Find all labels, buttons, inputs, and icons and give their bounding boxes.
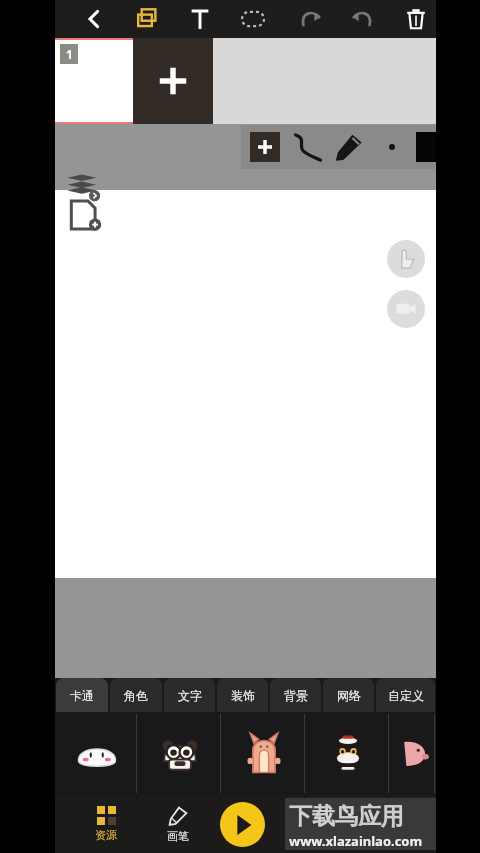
button[interactable]: 文字: [164, 678, 215, 712]
button[interactable]: [391, 712, 435, 795]
button[interactable]: 自定义: [376, 678, 435, 712]
button[interactable]: 角色: [110, 678, 162, 712]
button[interactable]: [307, 712, 389, 795]
button[interactable]: 网络: [323, 678, 374, 712]
button[interactable]: Brush size: [380, 135, 404, 159]
button[interactable]: Undo: [293, 2, 327, 36]
button[interactable]: [56, 712, 137, 795]
button[interactable]: Layers: [65, 172, 105, 204]
button[interactable]: 装饰: [217, 678, 268, 712]
button[interactable]: Add page: [67, 198, 103, 234]
button[interactable]: Back: [77, 2, 111, 36]
button[interactable]: Pencil: [332, 130, 366, 164]
button[interactable]: Layers: [130, 2, 164, 36]
staticText: 画笔: [167, 829, 189, 843]
button[interactable]: Camera view: [387, 290, 425, 328]
staticText: www.xlazainlao.com: [289, 832, 423, 850]
button[interactable]: 卡通: [56, 678, 108, 712]
staticText: 网络: [337, 688, 361, 703]
staticText: 装饰: [231, 688, 255, 703]
staticText: 卡通: [70, 688, 94, 703]
button[interactable]: [223, 712, 305, 795]
staticText: 背景: [284, 688, 308, 703]
staticText: 资源: [95, 828, 117, 842]
button[interactable]: [139, 712, 221, 795]
button[interactable]: 画笔: [149, 806, 207, 843]
button[interactable]: Add frame: [133, 38, 213, 124]
button[interactable]: Delete: [399, 2, 433, 36]
button[interactable]: 背景: [270, 678, 321, 712]
button[interactable]: 资源: [77, 806, 135, 842]
button[interactable]: Stroke: [290, 130, 324, 164]
button[interactable]: Text: [183, 2, 217, 36]
button[interactable]: Shape: [236, 2, 270, 36]
staticText: 角色: [124, 688, 148, 703]
staticText: 下载鸟应用: [289, 802, 404, 831]
button[interactable]: Add brush: [250, 132, 280, 162]
button[interactable]: Redo: [346, 2, 380, 36]
staticText: 文字: [178, 688, 202, 703]
staticText: 自定义: [388, 688, 424, 703]
button[interactable]: Touch mode: [387, 240, 425, 278]
staticText: 1: [66, 46, 73, 62]
button[interactable]: 1: [55, 38, 133, 124]
button[interactable]: Play: [220, 802, 265, 847]
